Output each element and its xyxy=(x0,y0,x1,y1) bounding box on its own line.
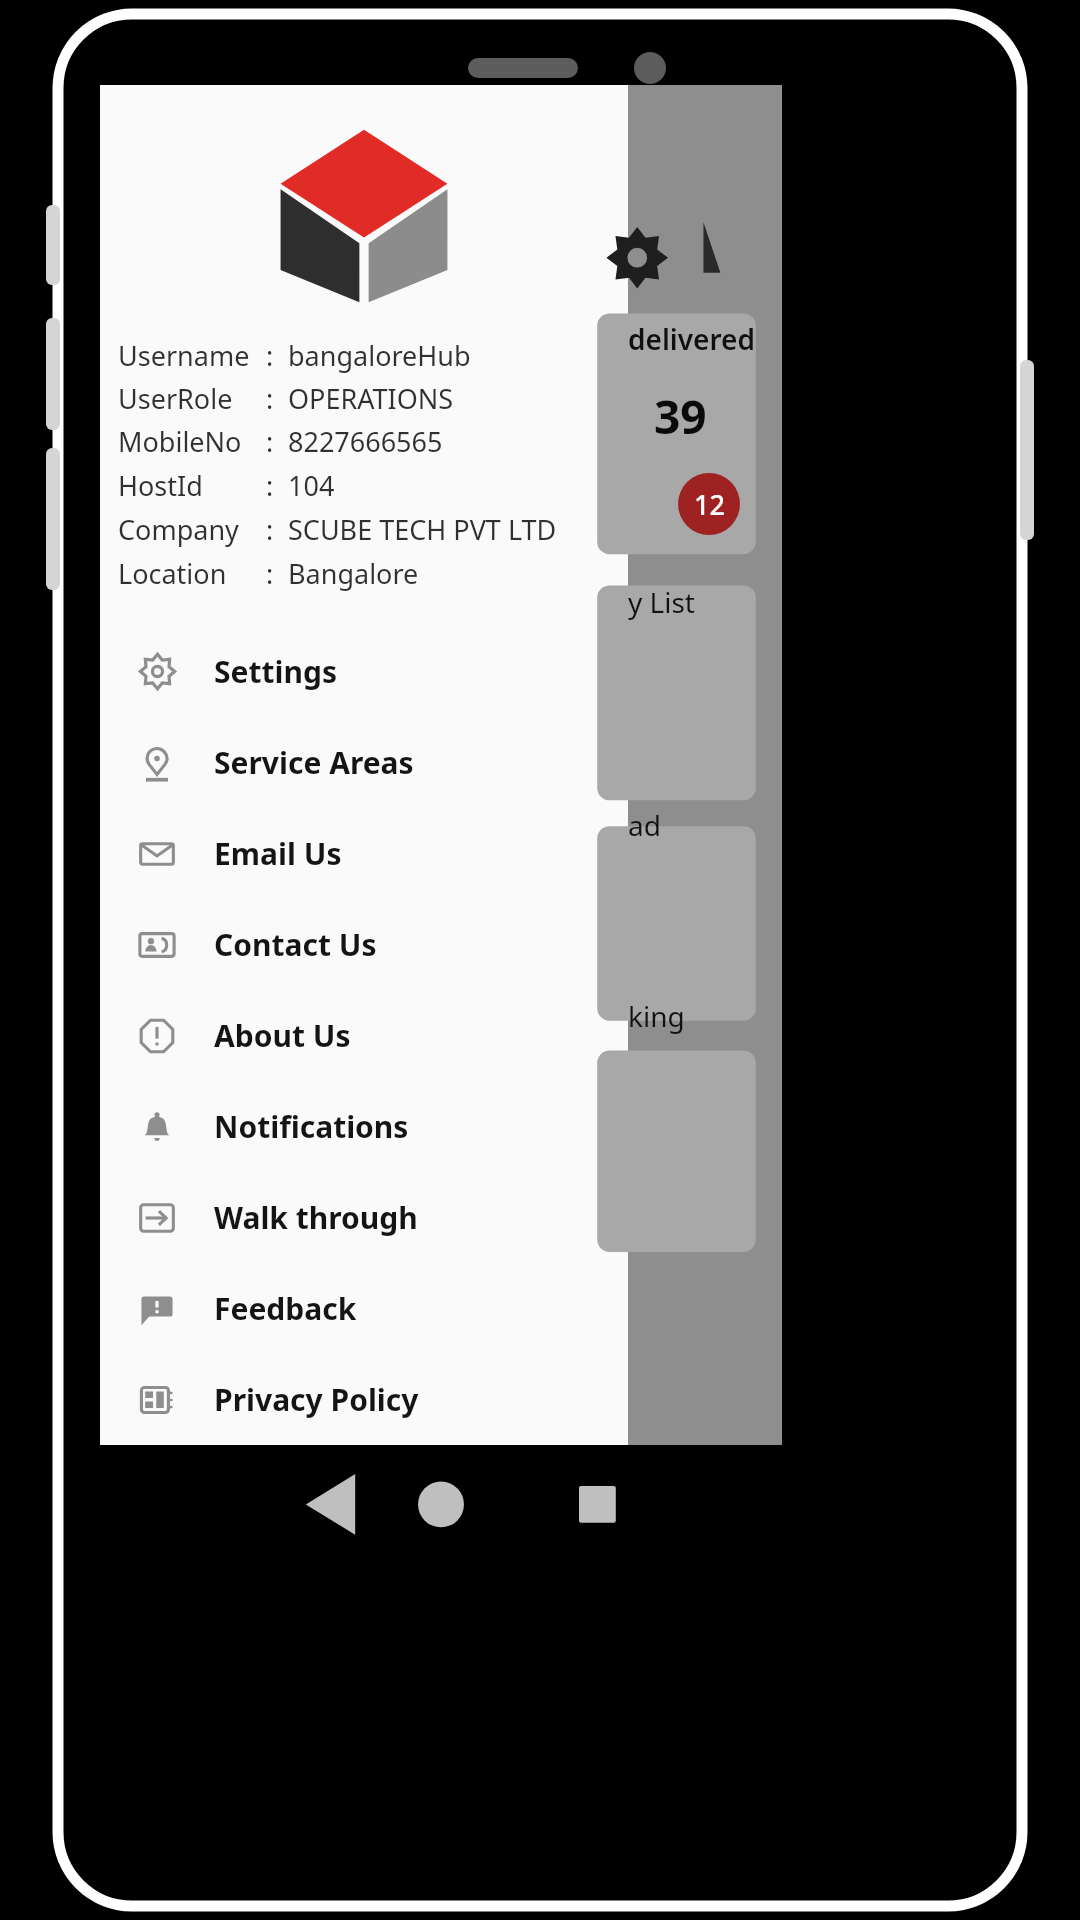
staticText: MobileNo xyxy=(118,423,266,460)
staticText: 104 xyxy=(288,467,335,504)
staticText: ad xyxy=(628,806,661,844)
staticText: : xyxy=(266,380,288,417)
staticText: Bangalore xyxy=(288,555,419,592)
staticText: HostId xyxy=(118,467,266,504)
staticText: Service Areas xyxy=(214,742,414,783)
staticText: y List xyxy=(628,583,695,621)
staticText: Walk through xyxy=(214,1197,418,1238)
staticText: 8227666565 xyxy=(288,423,443,460)
staticText: Username xyxy=(118,337,266,374)
staticText: SCUBE TECH PVT LTD xyxy=(288,511,557,548)
staticText: Email Us xyxy=(214,833,342,874)
staticText: Location xyxy=(118,555,266,592)
button[interactable]: Feedback xyxy=(100,1263,628,1354)
staticText: : xyxy=(266,337,288,374)
staticText: Feedback xyxy=(214,1288,357,1329)
staticText: 12 xyxy=(694,486,725,523)
staticText: 39 xyxy=(654,385,707,448)
button[interactable]: Notifications xyxy=(100,1081,628,1172)
staticText: : xyxy=(266,423,288,460)
button[interactable]: About Us xyxy=(100,990,628,1081)
staticText: Settings xyxy=(214,651,337,692)
staticText: UserRole xyxy=(118,380,266,417)
staticText: king xyxy=(628,997,685,1035)
staticText: delivered xyxy=(628,320,755,358)
button[interactable]: Walk through xyxy=(100,1172,628,1263)
button[interactable]: Settings xyxy=(100,625,628,717)
staticText: bangaloreHub xyxy=(288,337,471,374)
button[interactable]: Service Areas xyxy=(100,717,628,808)
button[interactable]: Contact Us xyxy=(100,899,628,990)
button[interactable]: Email Us xyxy=(100,808,628,899)
staticText: : xyxy=(266,467,288,504)
staticText: Privacy Policy xyxy=(214,1379,419,1420)
staticText: OPERATIONS xyxy=(288,380,454,417)
staticText: Notifications xyxy=(214,1106,409,1147)
staticText: : xyxy=(266,511,288,548)
button[interactable]: Privacy Policy xyxy=(100,1354,628,1445)
staticText: About Us xyxy=(214,1015,351,1056)
staticText: : xyxy=(266,555,288,592)
staticText: Contact Us xyxy=(214,924,377,965)
staticText: Company xyxy=(118,511,266,548)
